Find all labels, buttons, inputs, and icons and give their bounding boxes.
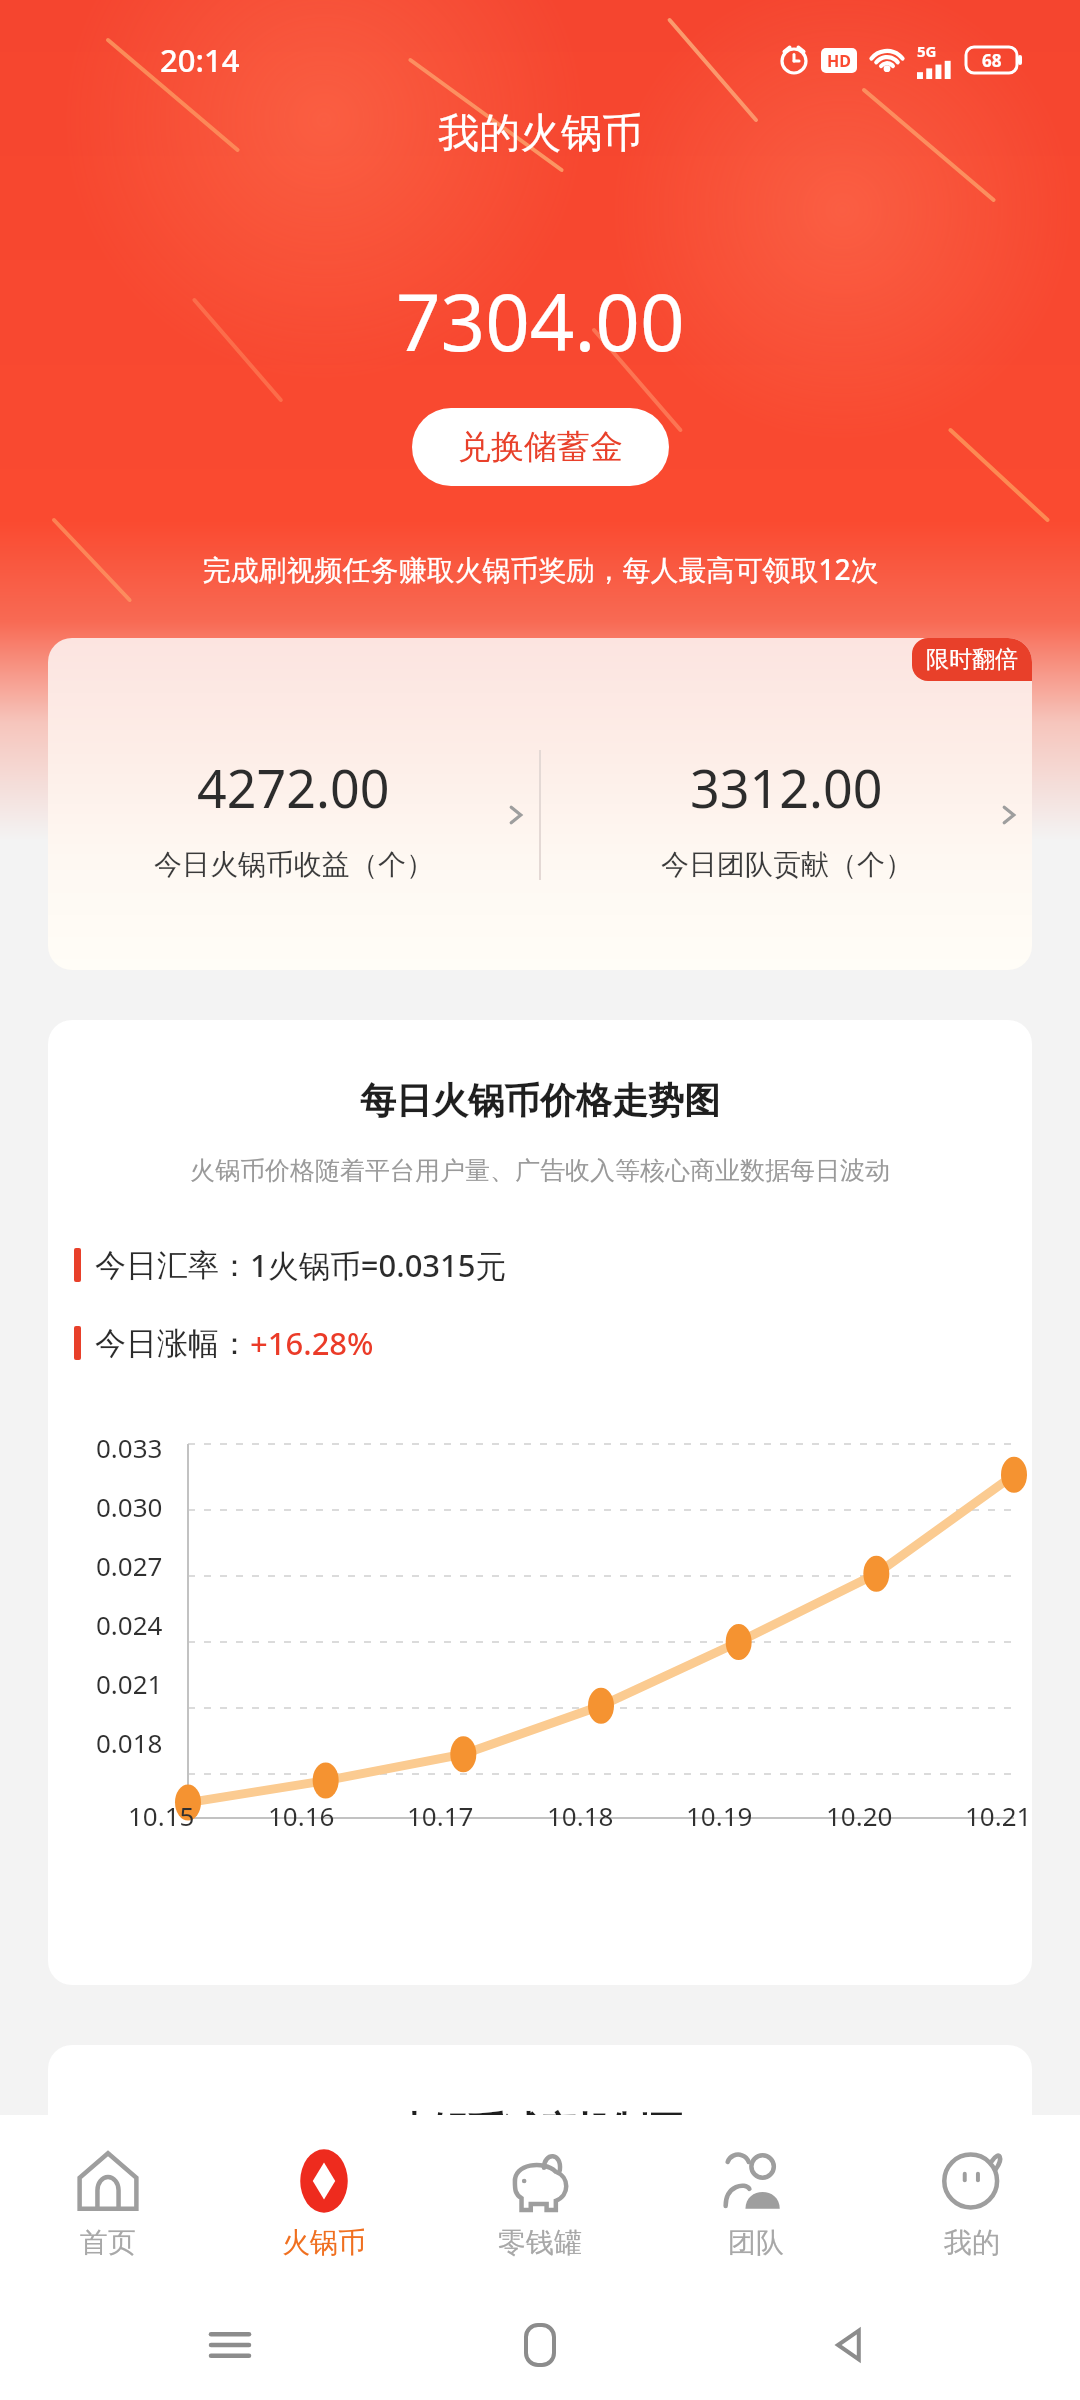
button[interactable]: 3312.00 [541, 748, 1032, 882]
staticText: 火锅币价格随着平台用户量、广告收入等核心商业数据每日波动 [56, 1155, 1024, 1186]
staticText: 10.17 [407, 1798, 474, 1833]
staticText: 火锅币 [282, 2225, 366, 2260]
button[interactable]: Back [820, 2315, 880, 2375]
staticText: 68 [982, 49, 1002, 72]
staticText: 1火锅币=0.0315元 [250, 1244, 507, 1286]
staticText: 0.018 [96, 1725, 163, 1760]
staticText: 限时翻倍 [926, 645, 1018, 674]
staticText: 0.033 [96, 1430, 163, 1465]
staticText: 团队 [728, 2225, 784, 2260]
button[interactable]: Recent apps [200, 2315, 260, 2375]
staticText: 我的 [944, 2225, 1000, 2260]
staticText: 0.024 [96, 1607, 163, 1642]
button[interactable]: 我的 [864, 2115, 1080, 2290]
staticText: 今日团队贡献（个） [661, 847, 913, 882]
staticText: 4272.00 [197, 752, 390, 823]
button[interactable]: 团队 [648, 2115, 864, 2290]
staticText: 今日汇率： [95, 1246, 250, 1285]
button[interactable]: 零钱罐 [432, 2115, 648, 2290]
staticText: 今日涨幅： [95, 1324, 250, 1363]
staticText: 我的火锅币 [438, 108, 643, 160]
staticText: 0.027 [96, 1548, 163, 1583]
button[interactable]: 限时翻倍 [912, 638, 1032, 681]
staticText: 7304.00 [396, 268, 685, 374]
button[interactable]: 兑换储蓄金 [412, 408, 669, 486]
staticText: HD [827, 50, 851, 72]
staticText: 火锅币减产机制图 [396, 2107, 684, 2152]
staticText: 10.19 [686, 1798, 753, 1833]
staticText: 每日火锅币价格走势图 [48, 1078, 1032, 1123]
staticText: 兑换储蓄金 [458, 426, 623, 468]
staticText: 零钱罐 [498, 2225, 582, 2260]
staticText: 10.16 [268, 1798, 335, 1833]
staticText: 首页 [80, 2225, 136, 2260]
staticText: 3312.00 [690, 752, 883, 823]
staticText: 0.021 [96, 1666, 163, 1701]
staticText: 完成刷视频任务赚取火锅币奖励，每人最高可领取12次 [202, 550, 879, 588]
staticText: 5G [917, 41, 937, 61]
staticText: 10.15 [128, 1798, 195, 1833]
button[interactable]: 首页 [0, 2115, 216, 2290]
staticText: +16.28% [250, 1322, 374, 1364]
button[interactable]: 火锅币 [216, 2115, 432, 2290]
staticText: 今日火锅币收益（个） [154, 847, 434, 882]
staticText: 10.20 [826, 1798, 893, 1833]
staticText: 10.18 [547, 1798, 614, 1833]
staticText: 10.21 [965, 1798, 1032, 1833]
button[interactable]: Home [510, 2315, 570, 2375]
staticText: 0.030 [96, 1489, 163, 1524]
button[interactable]: 4272.00 [48, 748, 539, 882]
staticText: 20:14 [160, 39, 240, 81]
